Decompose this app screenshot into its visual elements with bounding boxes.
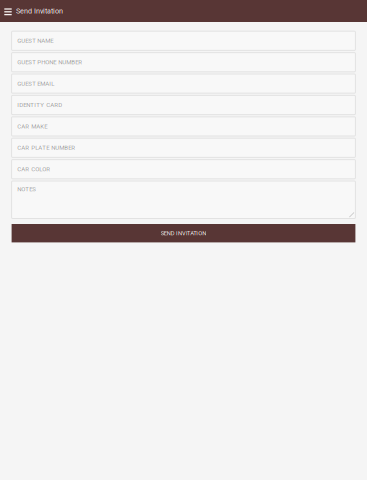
button[interactable]: CAR COLOR (12, 160, 355, 179)
button[interactable]: SEND INVITATION (12, 224, 355, 242)
button[interactable]: IDENTITY CARD (12, 95, 355, 115)
button[interactable]: NOTES (12, 181, 355, 218)
staticText: Send Invitation (16, 7, 63, 15)
staticText: SEND INVITATION (161, 230, 206, 236)
button[interactable]: GUEST NAME (12, 31, 355, 50)
staticText: NOTES (17, 186, 36, 193)
staticText: GUEST EMAIL (17, 80, 54, 87)
staticText: CAR PLATE NUMBER (17, 144, 75, 151)
button[interactable]: GUEST EMAIL (12, 74, 355, 93)
button[interactable]: CAR PLATE NUMBER (12, 138, 355, 157)
staticText: GUEST PHONE NUMBER (17, 59, 82, 66)
button[interactable]: CAR MAKE (12, 117, 355, 136)
staticText: CAR MAKE (17, 123, 47, 130)
staticText: IDENTITY CARD (17, 101, 62, 108)
button[interactable]: GUEST PHONE NUMBER (12, 53, 355, 72)
staticText: GUEST NAME (17, 37, 53, 44)
button[interactable]: Open navigation menu (0, 0, 16, 22)
staticText: CAR COLOR (17, 166, 50, 173)
